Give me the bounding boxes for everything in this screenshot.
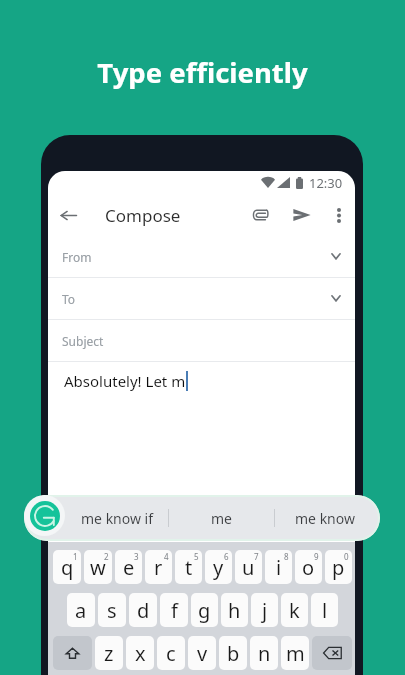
button[interactable]: k bbox=[281, 593, 308, 627]
button[interactable]: e bbox=[115, 550, 142, 584]
button[interactable]: d bbox=[129, 593, 157, 627]
button[interactable]: t bbox=[175, 550, 202, 584]
button[interactable]: To bbox=[48, 278, 355, 320]
button[interactable]: Backspace bbox=[312, 636, 352, 670]
button[interactable]: c bbox=[157, 636, 185, 670]
staticText: y bbox=[213, 554, 224, 581]
staticText: v bbox=[197, 640, 208, 667]
staticText: 7 bbox=[254, 551, 259, 562]
button[interactable]: Back bbox=[48, 194, 88, 236]
button[interactable]: p bbox=[325, 550, 352, 584]
button[interactable]: me bbox=[169, 495, 274, 541]
button[interactable]: n bbox=[250, 636, 278, 670]
staticText: h bbox=[228, 597, 241, 624]
button[interactable]: m bbox=[281, 636, 309, 670]
staticText: To bbox=[62, 291, 76, 307]
button[interactable]: b bbox=[219, 636, 247, 670]
staticText: j bbox=[262, 597, 268, 624]
button[interactable]: h bbox=[221, 593, 248, 627]
staticText: Type efficiently bbox=[0, 54, 405, 91]
button[interactable]: w bbox=[84, 550, 112, 584]
button[interactable]: j bbox=[251, 593, 278, 627]
staticText: 0 bbox=[344, 551, 349, 562]
button[interactable]: f bbox=[160, 593, 188, 627]
staticText: 6 bbox=[224, 551, 229, 562]
staticText: 4 bbox=[164, 551, 169, 562]
staticText: l bbox=[322, 597, 328, 624]
staticText: 9 bbox=[314, 551, 319, 562]
button[interactable]: q bbox=[53, 550, 81, 584]
staticText: Compose bbox=[105, 204, 181, 227]
button[interactable]: From bbox=[48, 236, 355, 278]
staticText: 8 bbox=[284, 551, 289, 562]
staticText: o bbox=[302, 554, 315, 581]
staticText: z bbox=[104, 640, 114, 667]
button[interactable]: r bbox=[145, 550, 172, 584]
button[interactable]: Attach file bbox=[243, 194, 277, 236]
staticText: Subject bbox=[62, 333, 104, 349]
staticText: e bbox=[123, 554, 135, 581]
button[interactable]: a bbox=[67, 593, 95, 627]
button[interactable]: s bbox=[98, 593, 126, 627]
staticText: me bbox=[211, 509, 232, 528]
staticText: From bbox=[62, 249, 92, 265]
button[interactable]: Send bbox=[285, 194, 319, 236]
button[interactable]: Subject bbox=[48, 320, 355, 362]
staticText: u bbox=[242, 554, 255, 581]
staticText: t bbox=[185, 554, 193, 581]
staticText: 1 bbox=[73, 551, 78, 562]
button[interactable]: l bbox=[311, 593, 338, 627]
button[interactable]: u bbox=[235, 550, 262, 584]
button[interactable]: x bbox=[126, 636, 154, 670]
staticText: d bbox=[137, 597, 150, 624]
staticText: s bbox=[107, 597, 117, 624]
staticText: c bbox=[166, 640, 176, 667]
staticText: x bbox=[135, 640, 146, 667]
button[interactable]: me know if bbox=[66, 495, 168, 541]
button[interactable]: More options bbox=[324, 194, 354, 236]
staticText: r bbox=[154, 554, 163, 581]
button[interactable]: me know bbox=[275, 495, 374, 541]
staticText: me know bbox=[295, 509, 355, 528]
button[interactable]: Shift bbox=[53, 636, 92, 670]
button[interactable]: i bbox=[265, 550, 292, 584]
staticText: 2 bbox=[104, 551, 109, 562]
staticText: m bbox=[286, 640, 305, 667]
staticText: 3 bbox=[134, 551, 139, 562]
staticText: me know if bbox=[81, 509, 154, 528]
button[interactable]: g bbox=[191, 593, 218, 627]
staticText: p bbox=[332, 554, 345, 581]
button[interactable]: Grammarly bbox=[24, 495, 65, 536]
button[interactable]: z bbox=[95, 636, 123, 670]
staticText: q bbox=[61, 554, 74, 581]
staticText: 5 bbox=[194, 551, 199, 562]
staticText: 12:30 bbox=[309, 174, 343, 192]
button[interactable]: o bbox=[295, 550, 322, 584]
staticText: b bbox=[227, 640, 240, 667]
staticText: a bbox=[75, 597, 87, 624]
staticText: Absolutely! Let m bbox=[64, 371, 186, 391]
staticText: i bbox=[276, 554, 282, 581]
staticText: w bbox=[90, 554, 106, 581]
button[interactable]: v bbox=[188, 636, 216, 670]
staticText: n bbox=[258, 640, 271, 667]
button[interactable]: y bbox=[205, 550, 232, 584]
staticText: f bbox=[171, 597, 178, 624]
staticText: g bbox=[198, 597, 211, 624]
staticText: k bbox=[289, 597, 300, 624]
